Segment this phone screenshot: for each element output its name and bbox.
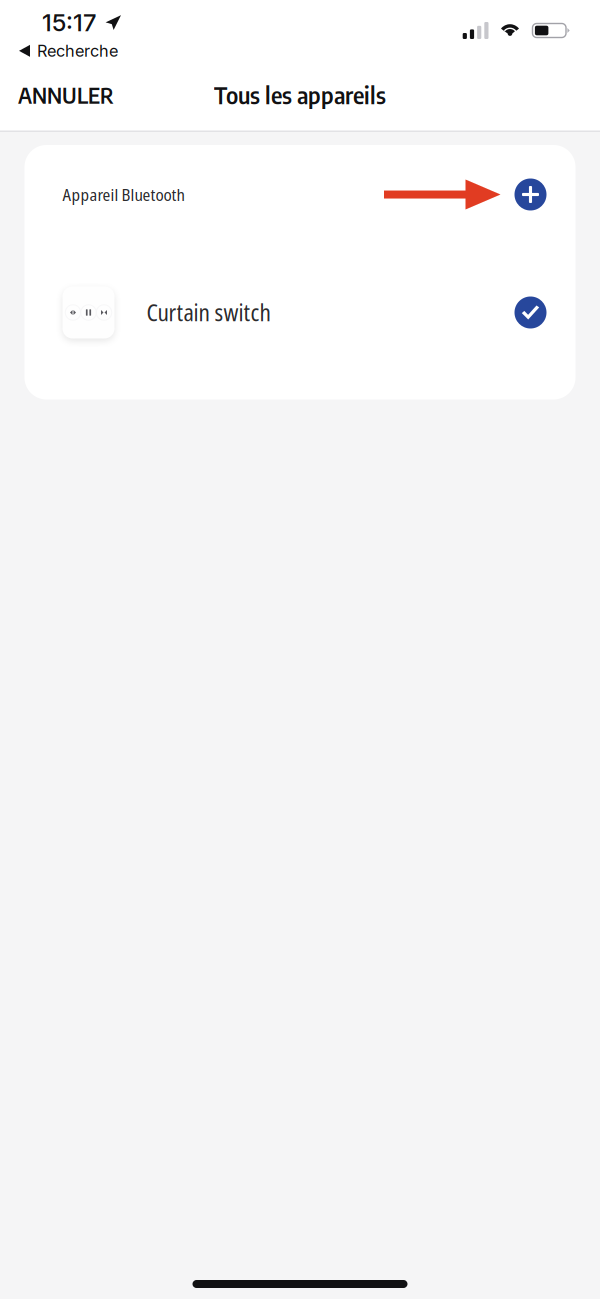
staticText: ANNULER — [18, 82, 114, 108]
button[interactable]: ANNULER — [0, 72, 128, 118]
button[interactable]: Recherche — [0, 0, 118, 65]
staticText: Tous les appareils — [214, 81, 386, 109]
button[interactable]: Curtain switch — [24, 244, 575, 381]
button[interactable]: Ajouter un appareil Bluetooth — [514, 178, 546, 210]
staticText: Appareil Bluetooth — [62, 183, 184, 206]
staticText: Recherche — [37, 41, 118, 61]
staticText: 15:17 — [42, 8, 96, 37]
staticText: Curtain switch — [146, 297, 270, 328]
